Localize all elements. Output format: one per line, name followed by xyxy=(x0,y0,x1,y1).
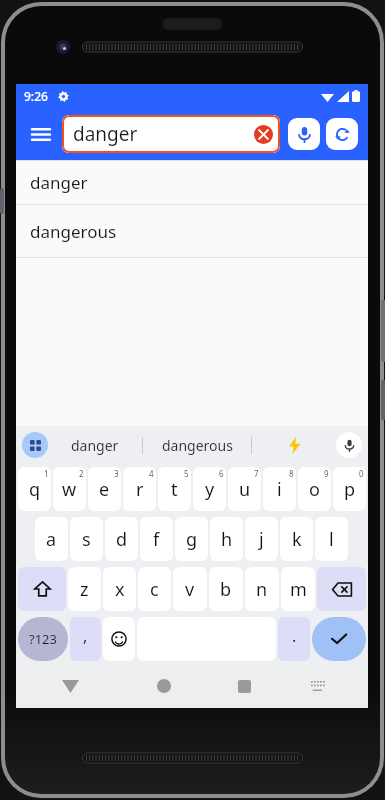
staticText: e xyxy=(99,477,110,502)
button[interactable]: Enter xyxy=(312,617,366,661)
staticText: v xyxy=(185,577,195,602)
button[interactable]: o xyxy=(298,467,331,511)
button[interactable]: e xyxy=(88,467,121,511)
button[interactable]: . xyxy=(278,617,310,661)
button[interactable]: t xyxy=(158,467,191,511)
button[interactable]: Swap languages xyxy=(326,118,358,150)
staticText: n xyxy=(256,577,268,602)
button[interactable]: danger xyxy=(62,115,280,153)
staticText: s xyxy=(82,527,91,552)
button[interactable]: Back xyxy=(16,664,124,708)
button[interactable]: l xyxy=(315,517,348,561)
staticText: 4 xyxy=(149,468,154,479)
button[interactable]: Recent apps xyxy=(204,664,284,708)
staticText: t xyxy=(171,477,178,502)
staticText: dangerous xyxy=(30,220,117,243)
staticText: w xyxy=(62,477,77,502)
button[interactable]: n xyxy=(245,567,279,611)
button[interactable]: p xyxy=(333,467,366,511)
staticText: o xyxy=(309,477,320,502)
staticText: 0 xyxy=(359,468,364,479)
staticText: 9 xyxy=(324,468,329,479)
button[interactable]: b xyxy=(209,567,243,611)
staticText: q xyxy=(29,477,41,502)
button[interactable]: z xyxy=(68,567,101,611)
button[interactable]: y xyxy=(193,467,226,511)
staticText: z xyxy=(80,577,89,602)
button[interactable]: v xyxy=(173,567,207,611)
button[interactable]: , xyxy=(70,617,101,661)
button[interactable]: w xyxy=(53,467,86,511)
button[interactable]: ?123 xyxy=(18,617,68,661)
button[interactable]: danger xyxy=(48,426,142,464)
button[interactable]: Emoji xyxy=(103,617,135,661)
staticText: f xyxy=(153,527,160,552)
button[interactable]: d xyxy=(105,517,138,561)
staticText: x xyxy=(115,577,125,602)
staticText: g xyxy=(186,527,198,552)
button[interactable]: Toolbar xyxy=(22,432,48,458)
staticText: danger xyxy=(30,171,88,194)
button[interactable]: g xyxy=(175,517,208,561)
button[interactable]: Voice search xyxy=(288,118,320,150)
staticText: i xyxy=(277,477,282,502)
button[interactable]: a xyxy=(35,517,68,561)
button[interactable]: Clear query xyxy=(254,125,273,144)
staticText: danger xyxy=(73,121,254,147)
staticText: ?123 xyxy=(29,630,57,648)
staticText: 8 xyxy=(289,468,294,479)
staticText: danger xyxy=(71,436,119,455)
button[interactable]: m xyxy=(281,567,315,611)
button[interactable]: Voice input xyxy=(336,432,362,458)
button[interactable]: Quick actions xyxy=(252,426,336,464)
staticText: p xyxy=(344,477,356,502)
staticText: j xyxy=(259,527,264,552)
staticText: . xyxy=(292,625,297,647)
button[interactable]: dangerous xyxy=(16,205,368,257)
button[interactable]: u xyxy=(228,467,261,511)
staticText: d xyxy=(116,527,128,552)
button[interactable]: danger xyxy=(16,161,368,204)
staticText: dangerous xyxy=(162,436,233,455)
staticText: 1 xyxy=(44,468,49,479)
staticText: r xyxy=(136,477,144,502)
staticText: m xyxy=(290,577,307,602)
button[interactable]: i xyxy=(263,467,296,511)
button[interactable]: x xyxy=(103,567,136,611)
staticText: h xyxy=(221,527,233,552)
staticText: c xyxy=(150,577,159,602)
staticText: b xyxy=(220,577,232,602)
staticText: 5 xyxy=(184,468,189,479)
staticText: y xyxy=(205,477,215,502)
staticText: l xyxy=(329,527,334,552)
button[interactable]: f xyxy=(140,517,173,561)
staticText: 7 xyxy=(254,468,259,479)
staticText: , xyxy=(83,625,88,647)
staticText: u xyxy=(239,477,251,502)
button[interactable]: h xyxy=(210,517,243,561)
button[interactable]: r xyxy=(123,467,156,511)
button[interactable]: q xyxy=(18,467,51,511)
button[interactable]: Open navigation menu xyxy=(24,117,58,151)
staticText: 3 xyxy=(114,468,119,479)
button[interactable]: dangerous xyxy=(143,426,251,464)
button[interactable]: Backspace xyxy=(317,567,366,611)
button[interactable]: s xyxy=(70,517,103,561)
staticText: a xyxy=(46,527,57,552)
staticText: k xyxy=(292,527,302,552)
button[interactable]: Home xyxy=(124,664,204,708)
button[interactable]: Shift xyxy=(18,567,66,611)
button[interactable]: Change keyboard xyxy=(284,664,352,708)
button[interactable]: j xyxy=(245,517,278,561)
button[interactable]: k xyxy=(280,517,313,561)
staticText: 2 xyxy=(79,468,84,479)
staticText: 9:26 xyxy=(24,88,48,104)
button[interactable]: c xyxy=(138,567,171,611)
staticText: 6 xyxy=(219,468,224,479)
